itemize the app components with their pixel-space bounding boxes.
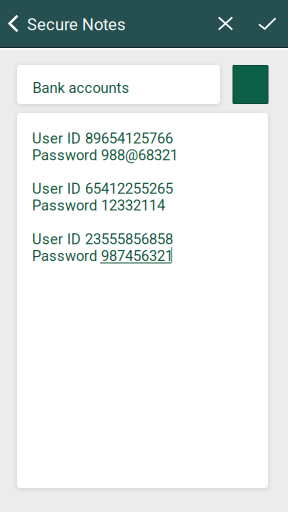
staticText: Password 987456321 <box>32 247 173 265</box>
button[interactable]: Back <box>0 0 27 46</box>
staticText: Password 988@68321 <box>32 147 178 164</box>
button[interactable]: Bank accounts <box>17 65 220 104</box>
staticText: Secure Notes <box>27 15 126 34</box>
staticText: Password 12332114 <box>32 197 165 214</box>
button[interactable]: Secure Notes <box>27 0 197 46</box>
staticText: User ID 89654125766 <box>32 130 173 147</box>
staticText: User ID 65412255265 <box>32 180 173 197</box>
button[interactable]: Note colour <box>233 65 268 103</box>
button[interactable]: Save <box>247 0 288 46</box>
staticText: Bank accounts <box>32 79 129 97</box>
button[interactable]: User ID 89654125766 <box>17 113 268 488</box>
staticText: User ID 23555856858 <box>32 231 173 248</box>
button[interactable]: Discard <box>204 0 247 46</box>
